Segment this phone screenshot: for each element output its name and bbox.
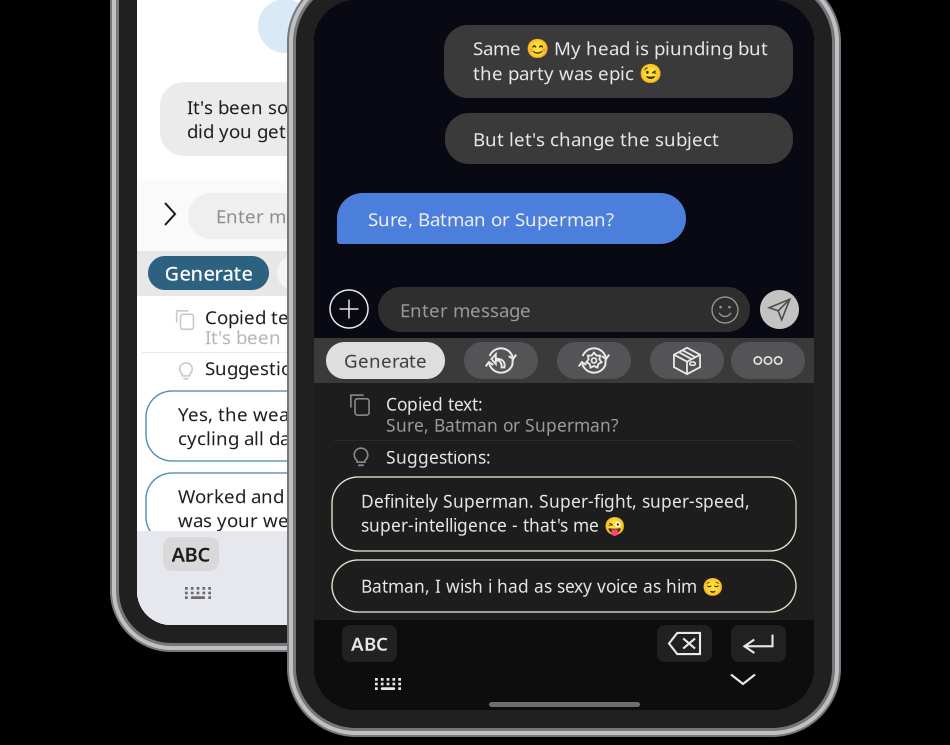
button[interactable]: Add attachment [330, 290, 368, 328]
staticText: was your we [178, 508, 289, 532]
button[interactable]: Enter message [378, 287, 750, 332]
staticText: Copied tex [205, 305, 298, 329]
staticText: Batman, I wish i had as sexy voice as hi… [361, 574, 724, 597]
staticText: Suggestion [205, 356, 304, 380]
button[interactable]: Send [760, 290, 799, 329]
button[interactable]: Packs [650, 342, 724, 379]
staticText: Yes, the wea [178, 402, 289, 426]
button[interactable]: ABC [342, 625, 397, 662]
staticText: cycling all da [178, 426, 290, 450]
staticText: Sure, Batman or Superman? [386, 413, 619, 436]
button[interactable]: Generate [148, 256, 269, 290]
button[interactable]: Definitely Superman. Super-fight, super-… [332, 477, 796, 551]
button[interactable]: Hide keyboard [730, 673, 756, 684]
staticText: super-intelligence - that's me 😜 [361, 513, 626, 536]
button[interactable]: Batman, I wish i had as sexy voice as hi… [332, 560, 796, 612]
button[interactable]: Rewrite [464, 342, 538, 379]
staticText: It's been so [187, 95, 288, 119]
staticText: the party was epic 😉 [473, 61, 662, 85]
button[interactable]: Generate [326, 342, 445, 379]
staticText: Copied text: [386, 392, 483, 415]
button[interactable]: Switch keyboard [375, 678, 401, 690]
staticText: ABC [351, 631, 388, 656]
staticText: Definitely Superman. Super-fight, super-… [361, 489, 750, 512]
staticText: Same 😊 My head is piunding but [473, 36, 768, 60]
staticText: ABC [171, 541, 210, 567]
staticText: did you get [187, 119, 286, 143]
staticText: Generate [344, 348, 427, 373]
staticText: But let's change the subject [473, 127, 719, 151]
button[interactable]: Expand actions [164, 202, 176, 226]
staticText: Enter me [216, 204, 297, 228]
button[interactable]: Return [731, 625, 786, 662]
staticText: Worked and [178, 484, 284, 508]
staticText: Suggestions: [386, 445, 491, 468]
button[interactable]: Delete [657, 625, 712, 662]
button[interactable]: Tone settings [557, 342, 631, 379]
staticText: It's been so [205, 325, 306, 349]
button[interactable]: More options [731, 342, 805, 379]
staticText: Enter message [400, 298, 531, 322]
staticText: Sure, Batman or Superman? [368, 207, 614, 231]
staticText: Generate [164, 260, 252, 286]
